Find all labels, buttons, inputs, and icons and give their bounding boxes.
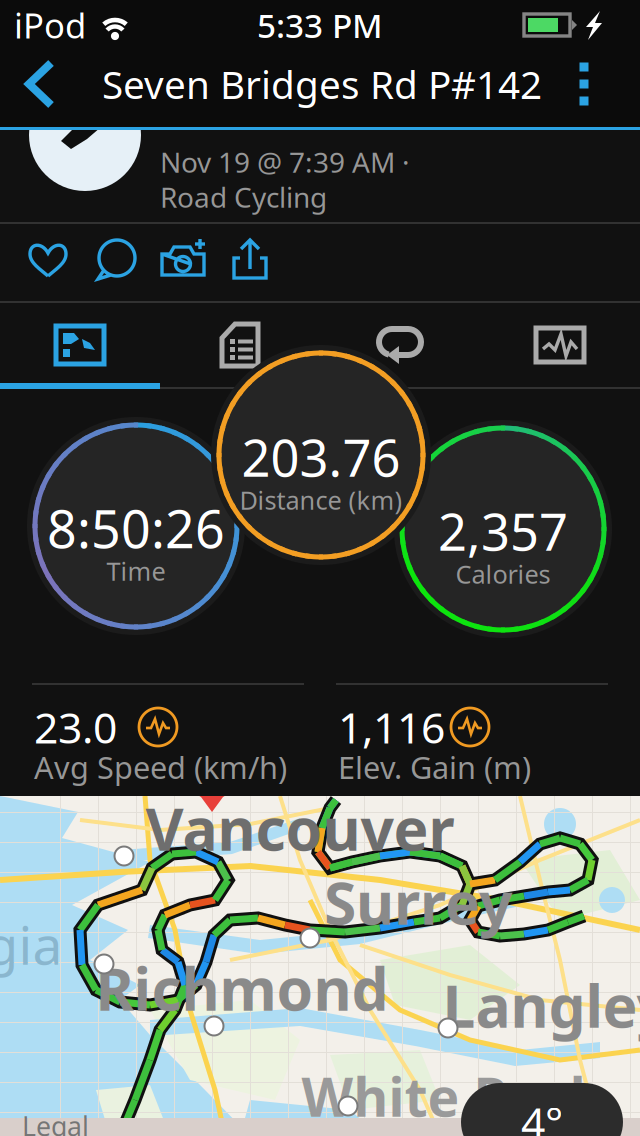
staticText: Nov 19 @ 7:39 AM ·: [160, 143, 410, 181]
staticText: Richmond: [95, 949, 388, 1027]
button[interactable]: Laps: [320, 303, 480, 387]
staticText: Legal: [22, 1108, 89, 1136]
staticText: 203.76: [241, 423, 400, 491]
staticText: Elev. Gain (m): [338, 747, 531, 787]
staticText: Surrey: [324, 863, 512, 941]
staticText: White Rock: [301, 1061, 602, 1131]
button[interactable]: Map: [0, 303, 160, 387]
staticText: 4°: [521, 1094, 563, 1136]
staticText: 23.0: [34, 699, 117, 755]
staticText: iPod: [14, 2, 86, 48]
button[interactable]: More options: [552, 42, 616, 126]
button[interactable]: Details: [160, 303, 320, 387]
staticText: Avg Speed (km/h): [34, 747, 287, 787]
staticText: 5:33 PM: [257, 3, 383, 47]
button[interactable]: Share: [217, 229, 283, 291]
button[interactable]: Charts: [480, 303, 640, 387]
button[interactable]: Like: [15, 229, 81, 291]
staticText: Calories: [455, 557, 550, 591]
staticText: gia: [0, 909, 62, 979]
staticText: Seven Bridges Rd P#142: [102, 58, 542, 110]
staticText: Road Cycling: [160, 178, 327, 216]
button[interactable]: Add photo: [150, 229, 216, 291]
staticText: 8:50:26: [47, 493, 225, 563]
button[interactable]: Comment: [83, 229, 149, 291]
staticText: Distance (km): [239, 483, 402, 517]
staticText: 2,357: [438, 497, 568, 565]
staticText: Time: [106, 554, 165, 588]
button[interactable]: Back: [1, 42, 79, 126]
staticText: 1,116: [338, 699, 445, 755]
staticText: Vancouver: [145, 789, 454, 867]
staticText: Langley: [442, 966, 640, 1044]
